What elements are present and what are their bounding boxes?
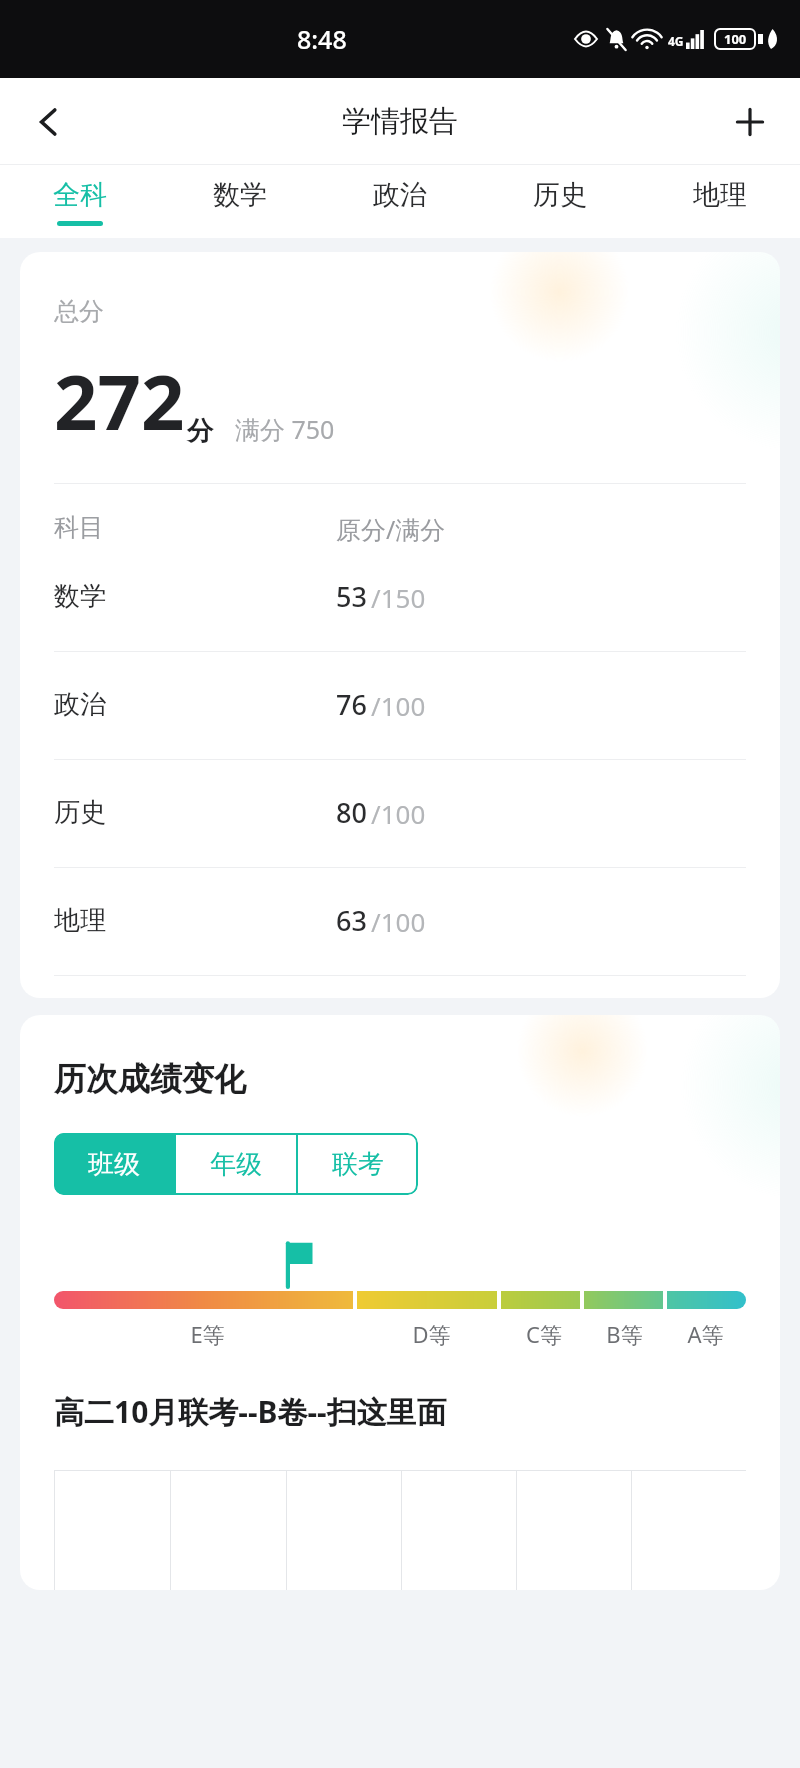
staticText: 科目 bbox=[54, 512, 336, 543]
staticText: 历次成绩变化 bbox=[54, 1059, 246, 1099]
button[interactable]: 年级 bbox=[176, 1133, 296, 1195]
staticText: 数学 bbox=[54, 580, 336, 613]
staticText: /100 bbox=[371, 796, 426, 831]
staticText: 年级 bbox=[210, 1148, 262, 1181]
staticText: 历史 bbox=[54, 796, 336, 829]
staticText: 班级 bbox=[88, 1148, 140, 1181]
staticText: A等 bbox=[687, 1319, 724, 1349]
staticText: 76 bbox=[336, 686, 367, 723]
button[interactable]: 地理 bbox=[54, 902, 746, 939]
staticText: 80 bbox=[336, 794, 367, 831]
staticText: 政治 bbox=[54, 688, 336, 721]
staticText: 联考 bbox=[332, 1148, 384, 1181]
staticText: /150 bbox=[371, 580, 426, 615]
staticText: E等 bbox=[190, 1319, 225, 1349]
staticText: 4G bbox=[668, 33, 684, 49]
button[interactable]: 数学 bbox=[54, 578, 746, 615]
staticText: 满分 750 bbox=[235, 412, 335, 446]
button[interactable]: 政治 bbox=[320, 165, 480, 238]
button[interactable]: Add bbox=[722, 94, 778, 150]
staticText: 63 bbox=[336, 902, 367, 939]
button[interactable]: 政治 bbox=[54, 686, 746, 723]
button[interactable]: Back bbox=[22, 94, 78, 150]
staticText: 8:48 bbox=[297, 22, 347, 56]
button[interactable]: 地理 bbox=[640, 165, 800, 238]
staticText: 学情报告 bbox=[342, 103, 458, 140]
button[interactable]: 班级 bbox=[54, 1133, 174, 1195]
staticText: C等 bbox=[526, 1319, 562, 1349]
staticText: 总分 bbox=[54, 296, 104, 327]
staticText: 分 bbox=[187, 415, 213, 448]
staticText: 历史 bbox=[533, 178, 587, 212]
staticText: 地理 bbox=[54, 904, 336, 937]
staticText: 全科 bbox=[53, 178, 107, 212]
button[interactable]: 历史 bbox=[54, 794, 746, 831]
staticText: B等 bbox=[606, 1319, 643, 1349]
staticText: /100 bbox=[371, 904, 426, 939]
button[interactable]: 联考 bbox=[298, 1133, 418, 1195]
staticText: 地理 bbox=[693, 178, 747, 212]
button[interactable]: 数学 bbox=[160, 165, 320, 238]
button[interactable]: 全科 bbox=[0, 165, 160, 238]
staticText: 原分/满分 bbox=[336, 512, 746, 546]
staticText: 数学 bbox=[213, 178, 267, 212]
staticText: 政治 bbox=[373, 178, 427, 212]
staticText: D等 bbox=[412, 1319, 451, 1349]
staticText: 53 bbox=[336, 578, 367, 615]
staticText: 100 bbox=[724, 30, 747, 48]
staticText: 高二10月联考--B卷--扫这里面 bbox=[54, 1391, 447, 1432]
button[interactable]: 历史 bbox=[480, 165, 640, 238]
staticText: 272 bbox=[54, 349, 185, 453]
staticText: /100 bbox=[371, 688, 426, 723]
